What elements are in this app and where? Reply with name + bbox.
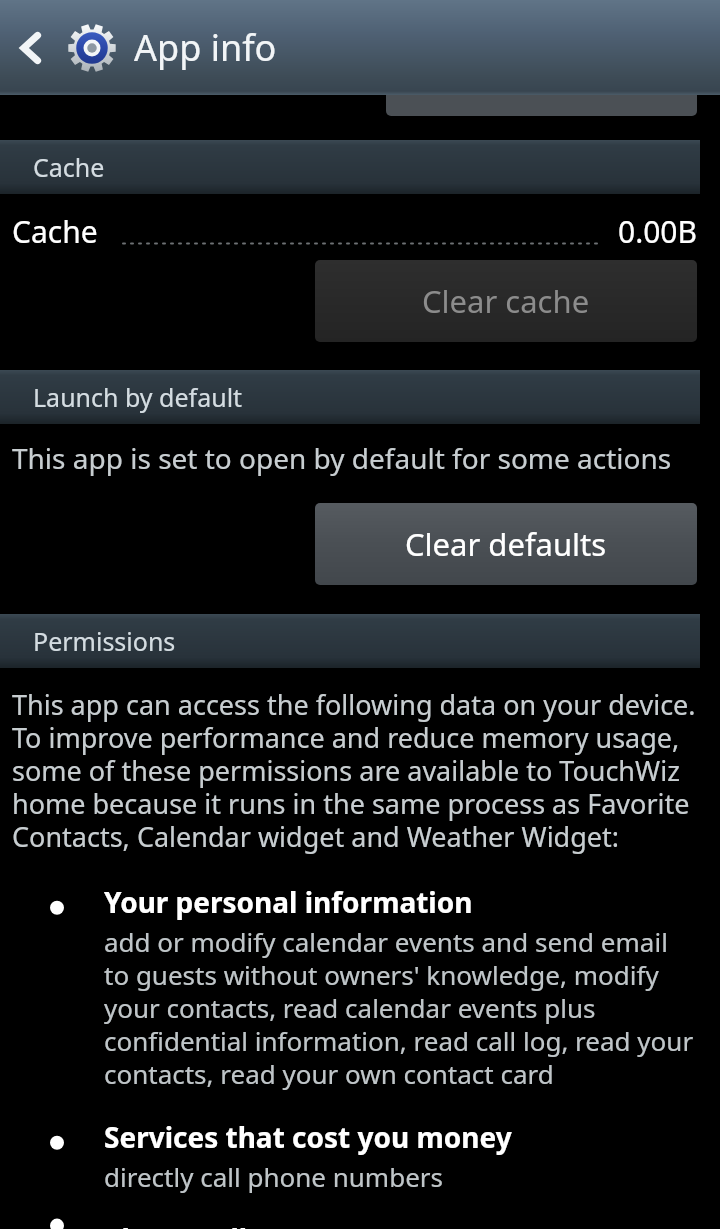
staticText: Launch by default (33, 380, 243, 414)
button: Clear cache (315, 260, 697, 342)
staticText: Clear cache (422, 280, 590, 322)
staticText: Your personal information (104, 883, 473, 921)
staticText: 0.00B (618, 211, 698, 252)
staticText: App info (134, 23, 277, 72)
staticText: Cache (33, 150, 105, 184)
staticText: Services that cost you money (104, 1118, 512, 1156)
button[interactable]: Navigate up (0, 0, 62, 95)
staticText: add or modify calendar events and send e… (104, 924, 698, 1092)
staticText: directly call phone numbers (104, 1159, 443, 1194)
staticText: This app can access the following data o… (12, 686, 700, 855)
staticText: Permissions (33, 624, 176, 658)
staticText: Cache (12, 211, 98, 252)
staticText: Clear defaults (405, 523, 607, 565)
staticText: This app is set to open by default for s… (12, 439, 672, 477)
button[interactable] (386, 95, 697, 116)
staticText: Phone calls (104, 1220, 262, 1229)
button[interactable]: Clear defaults (315, 503, 697, 585)
